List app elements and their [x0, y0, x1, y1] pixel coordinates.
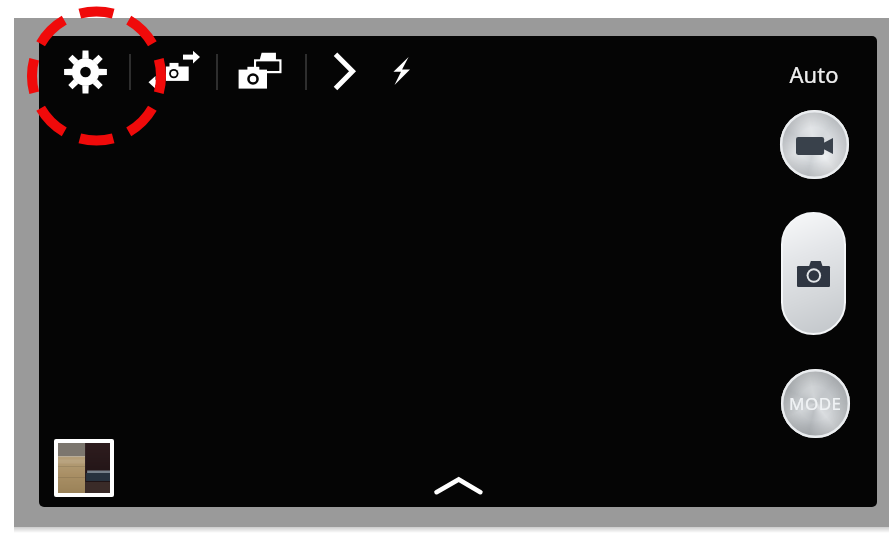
button[interactable]: Dual camera — [236, 50, 286, 92]
staticText: MODE — [789, 392, 842, 415]
button[interactable]: Flash — [392, 57, 410, 85]
button[interactable]: Expand shortcuts — [428, 466, 490, 502]
button[interactable]: Gallery — [54, 439, 114, 497]
button[interactable]: Take photo — [782, 213, 845, 334]
button[interactable]: Shooting mode — [781, 369, 850, 438]
button[interactable]: Record video — [780, 110, 849, 179]
button[interactable]: Switch camera — [144, 46, 206, 94]
button[interactable]: More options — [330, 49, 360, 95]
button[interactable]: Settings — [63, 50, 108, 94]
staticText: Auto — [779, 59, 849, 89]
